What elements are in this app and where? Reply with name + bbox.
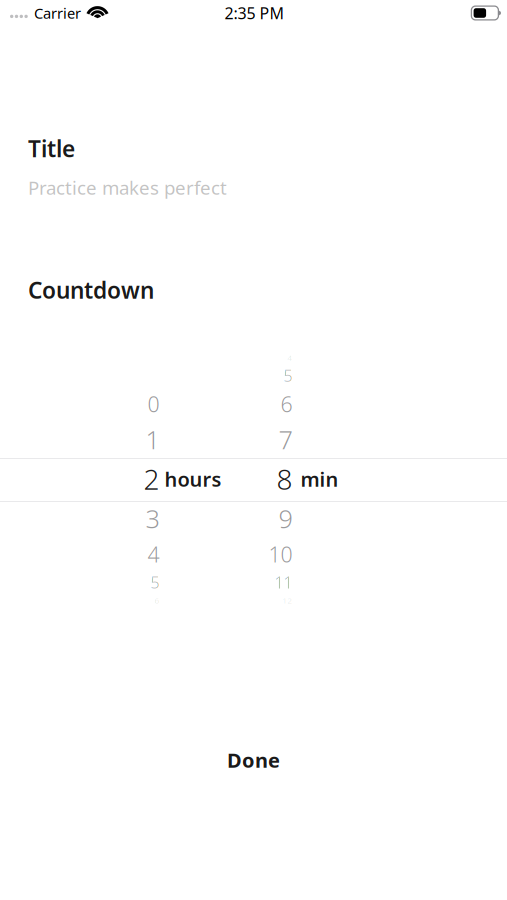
button[interactable]: Practice makes perfect [28, 176, 479, 198]
staticText: 0 [147, 390, 159, 418]
staticText: Title [28, 133, 75, 163]
staticText: 5 [283, 365, 292, 386]
staticText: 11 [274, 572, 292, 593]
staticText: 4 [287, 352, 292, 363]
staticText: 3 [145, 502, 159, 535]
staticText: Carrier [34, 3, 81, 23]
staticText: Countdown [28, 275, 154, 305]
staticText: 2:35 PM [224, 2, 284, 24]
button[interactable]: Minutes: 8 [253, 348, 386, 610]
staticText: 12 [282, 595, 292, 606]
staticText: 2 [143, 460, 159, 498]
staticText: Done [227, 747, 280, 773]
staticText: 9 [278, 502, 292, 535]
button[interactable]: Hours: 2 [120, 348, 253, 610]
staticText: 8 [276, 460, 292, 498]
staticText: 7 [278, 423, 292, 456]
staticText: 6 [154, 595, 159, 606]
staticText: 5 [150, 572, 159, 593]
staticText: 6 [280, 390, 292, 418]
staticText: 4 [147, 540, 159, 568]
staticText: 10 [268, 540, 292, 568]
staticText: 1 [145, 423, 159, 456]
button[interactable]: Done [203, 749, 304, 771]
staticText: min [300, 466, 338, 492]
staticText: hours [164, 466, 221, 492]
staticText: Practice makes perfect [28, 175, 227, 200]
